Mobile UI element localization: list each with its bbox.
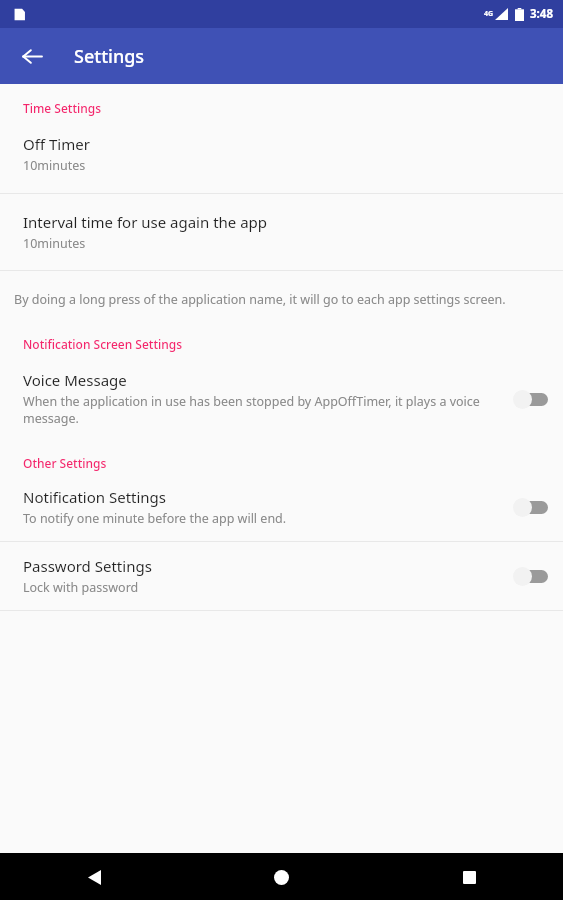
staticText: Off Timer xyxy=(23,134,90,154)
staticText: When the application in use has been sto… xyxy=(23,393,485,427)
staticText: Notification Screen Settings xyxy=(23,336,183,352)
button[interactable]: Back xyxy=(10,34,54,78)
staticText: 3:48 xyxy=(530,6,553,22)
staticText: Notification Settings xyxy=(23,487,167,507)
button[interactable]: Recents xyxy=(449,857,489,897)
staticText: To notify one minute before the app will… xyxy=(23,510,287,527)
staticText: 10minutes xyxy=(23,157,86,174)
staticText: 4G xyxy=(484,9,494,19)
staticText: By doing a long press of the application… xyxy=(14,291,506,308)
button[interactable]: Interval time for use again the app xyxy=(0,212,563,252)
button[interactable]: Home xyxy=(261,857,301,897)
staticText: Time Settings xyxy=(23,100,102,116)
staticText: 10minutes xyxy=(23,235,86,252)
button[interactable]: Off Timer xyxy=(0,134,563,174)
staticText: Other Settings xyxy=(23,455,107,471)
button[interactable]: Back xyxy=(74,857,114,897)
button[interactable]: Password Settings xyxy=(0,556,563,596)
staticText: Settings xyxy=(74,44,145,69)
button[interactable]: Voice Message xyxy=(0,370,563,427)
staticText: Voice Message xyxy=(23,370,127,390)
button[interactable]: Notification Settings xyxy=(0,487,563,527)
staticText: Lock with password xyxy=(23,579,139,596)
staticText: Password Settings xyxy=(23,556,152,576)
staticText: Interval time for use again the app xyxy=(23,212,268,232)
